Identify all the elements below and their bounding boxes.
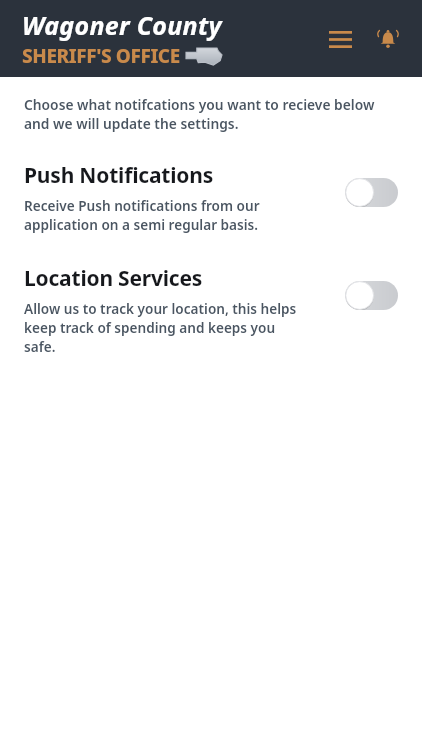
staticText: Location Services: [24, 264, 203, 293]
button[interactable]: Wagoner County: [22, 8, 222, 69]
button[interactable]: Menu: [320, 19, 360, 59]
button[interactable]: Toggle: [345, 178, 398, 207]
staticText: Choose what notifcations you want to rec…: [24, 95, 392, 133]
button[interactable]: Toggle: [345, 281, 398, 310]
button[interactable]: Notifications: [368, 19, 408, 59]
staticText: Allow us to track your location, this he…: [24, 299, 307, 356]
staticText: SHERIFF'S OFFICE: [22, 43, 180, 69]
staticText: Wagoner County: [22, 8, 222, 42]
staticText: Receive Push notifications from our appl…: [24, 196, 307, 234]
button[interactable]: Push Notifications: [0, 161, 422, 234]
button[interactable]: Location Services: [0, 264, 422, 356]
staticText: Push Notifications: [24, 161, 214, 190]
